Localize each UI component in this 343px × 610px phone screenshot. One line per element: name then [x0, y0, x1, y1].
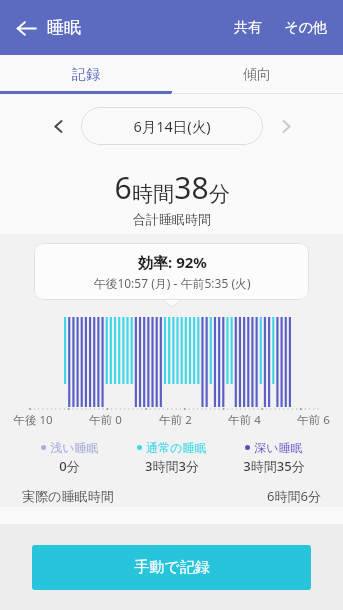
staticText: 午後10:57 (月) - 午前5:35 (火): [93, 275, 251, 291]
staticText: 6時間6分: [267, 487, 321, 505]
staticText: 0分: [59, 457, 80, 475]
staticText: 傾向: [243, 66, 271, 84]
button[interactable]: その他: [278, 13, 333, 43]
staticText: 午前 6: [297, 412, 330, 428]
staticText: 3時間3分: [145, 457, 199, 475]
staticText: 深い睡眠: [254, 440, 303, 455]
button[interactable]: 手動で記録: [32, 545, 311, 590]
staticText: 38: [174, 167, 209, 208]
button[interactable]: 深い睡眠: [223, 440, 325, 475]
staticText: 共有: [234, 19, 262, 37]
staticText: 午前 2: [159, 412, 192, 428]
staticText: 効率: 92%: [138, 252, 207, 272]
staticText: 時間: [132, 181, 174, 207]
button[interactable]: 次の日: [269, 109, 303, 143]
staticText: 午前 0: [89, 412, 122, 428]
staticText: 6月14日(火): [133, 116, 211, 136]
button[interactable]: 6月14日(火): [81, 107, 263, 145]
staticText: 6: [114, 167, 132, 208]
staticText: 午後 10: [13, 412, 53, 428]
staticText: 実際の睡眠時間: [22, 488, 114, 504]
staticText: 浅い睡眠: [50, 440, 99, 455]
button[interactable]: 効率: 92%: [34, 243, 309, 300]
staticText: 分: [209, 181, 230, 207]
button[interactable]: 戻る: [6, 8, 46, 48]
staticText: その他: [284, 19, 327, 37]
button[interactable]: 共有: [226, 13, 270, 43]
staticText: 午前 4: [228, 412, 261, 428]
button[interactable]: 記録: [0, 55, 171, 94]
staticText: 睡眠: [47, 17, 81, 38]
staticText: 合計睡眠時間: [133, 211, 211, 227]
staticText: 3時間35分: [243, 457, 305, 475]
button[interactable]: 浅い睡眠: [18, 440, 121, 475]
button[interactable]: 実際の睡眠時間: [0, 487, 343, 505]
staticText: 手動で記録: [134, 558, 210, 577]
staticText: 通常の睡眠: [146, 440, 207, 455]
button[interactable]: 傾向: [171, 55, 343, 94]
staticText: 記録: [72, 66, 100, 84]
button[interactable]: 前の日: [41, 109, 75, 143]
button[interactable]: 通常の睡眠: [121, 440, 223, 475]
